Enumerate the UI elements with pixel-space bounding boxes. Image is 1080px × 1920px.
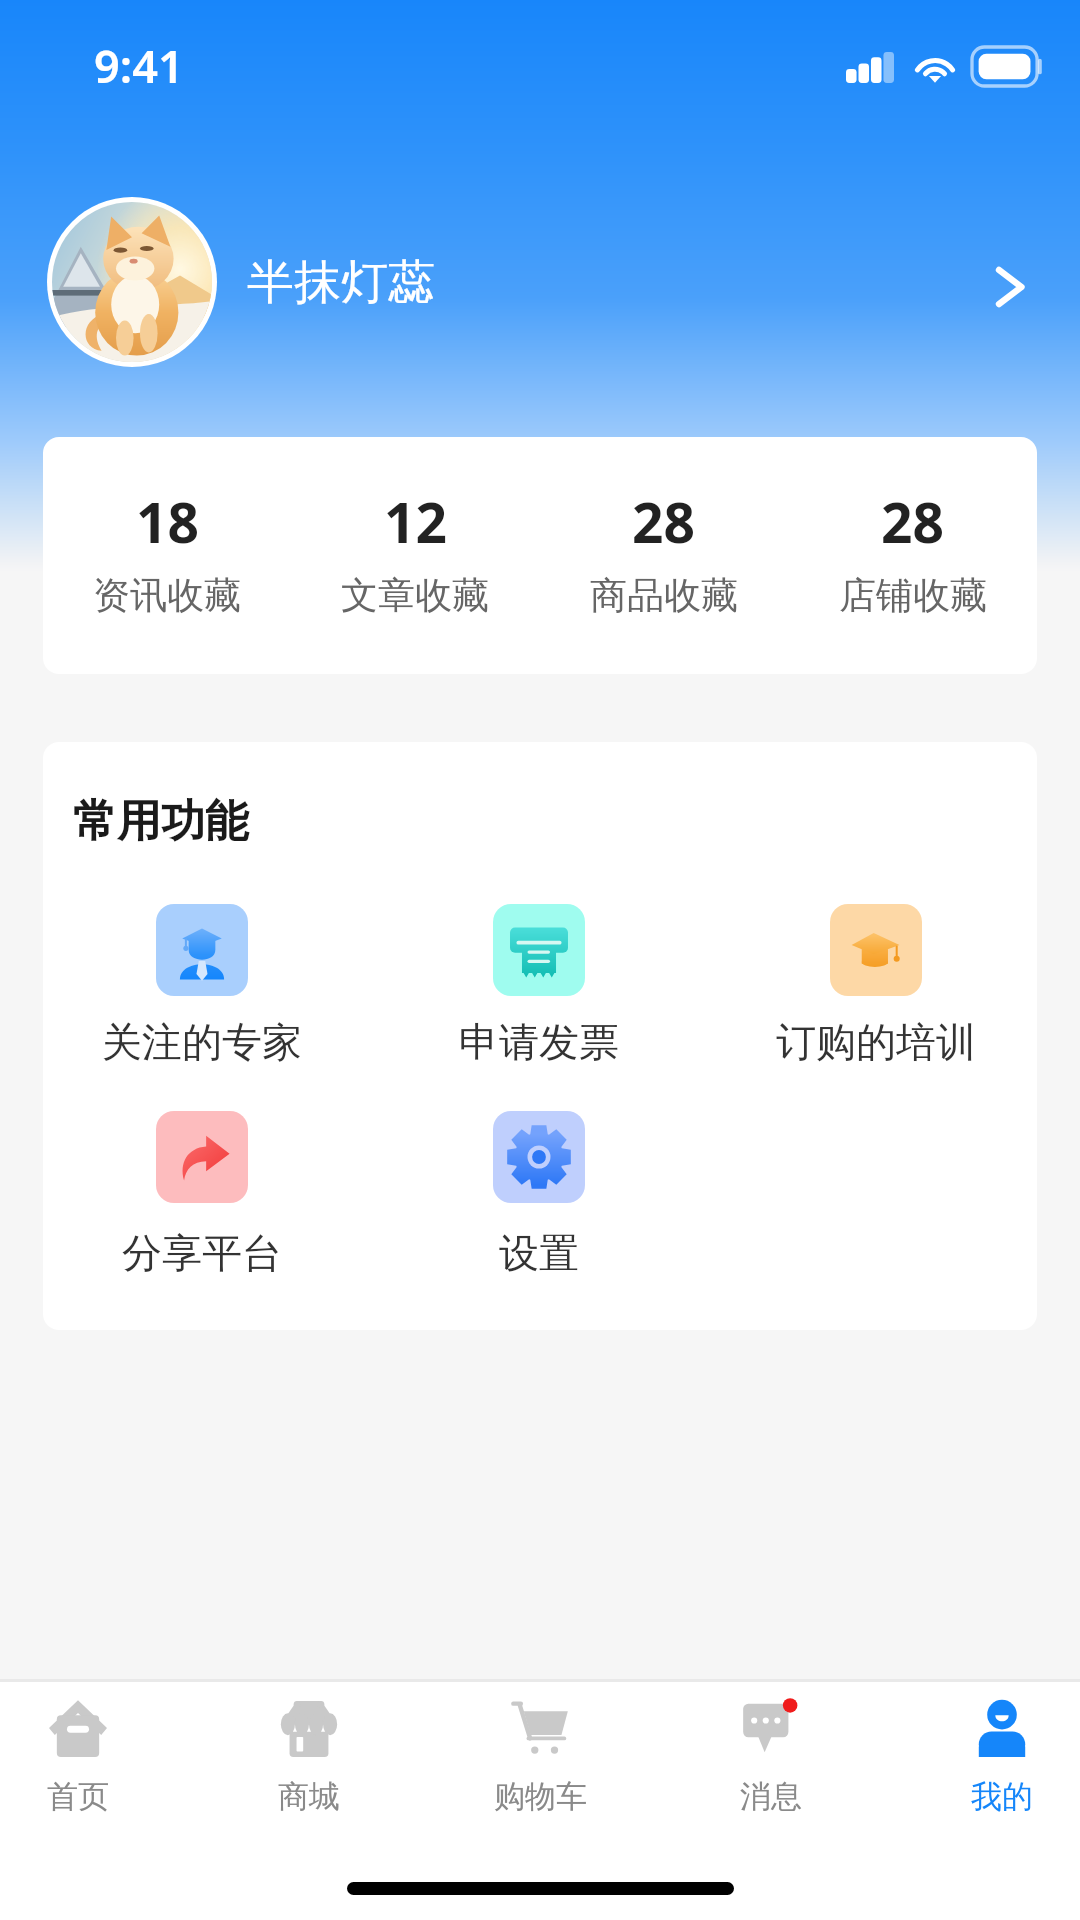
button[interactable]: 28	[539, 437, 788, 674]
button[interactable]: 关注的专家	[92, 904, 312, 1079]
button[interactable]: 我的	[894, 1684, 1080, 1829]
staticText: 资讯收藏	[93, 572, 241, 619]
staticText: 常用功能	[73, 794, 249, 849]
staticText: 12	[384, 484, 447, 559]
button[interactable]: 分享平台	[92, 1111, 312, 1286]
staticText: 分享平台	[122, 1228, 282, 1278]
staticText: 半抹灯蕊	[247, 253, 435, 312]
staticText: 消息	[740, 1777, 802, 1816]
button[interactable]: 设置	[429, 1111, 649, 1286]
staticText: 28	[881, 484, 944, 559]
button[interactable]: 申请发票	[429, 904, 649, 1079]
staticText: 申请发票	[459, 1017, 619, 1067]
button[interactable]: 半抹灯蕊	[0, 197, 1080, 367]
button[interactable]: 18	[43, 437, 291, 674]
staticText: 18	[136, 484, 199, 559]
staticText: 订购的培训	[776, 1017, 976, 1067]
staticText: 购物车	[494, 1777, 587, 1816]
button[interactable]: 消息	[663, 1684, 879, 1829]
button[interactable]: 12	[291, 437, 539, 674]
staticText: 商城	[278, 1777, 340, 1816]
staticText: 28	[632, 484, 695, 559]
staticText: 文章收藏	[341, 572, 489, 619]
button[interactable]: 首页	[0, 1684, 186, 1829]
button[interactable]: 订购的培训	[766, 904, 986, 1079]
staticText: 我的	[971, 1777, 1033, 1816]
button[interactable]: 购物车	[432, 1684, 648, 1829]
staticText: 9:41	[94, 35, 184, 96]
other: Open profile details	[997, 264, 1023, 310]
button[interactable]: 28	[788, 437, 1037, 674]
staticText: 首页	[47, 1777, 109, 1816]
staticText: 商品收藏	[590, 572, 738, 619]
staticText: 店铺收藏	[839, 572, 987, 619]
button[interactable]: 商城	[201, 1684, 417, 1829]
staticText: 关注的专家	[102, 1017, 302, 1067]
staticText: 设置	[499, 1228, 579, 1278]
